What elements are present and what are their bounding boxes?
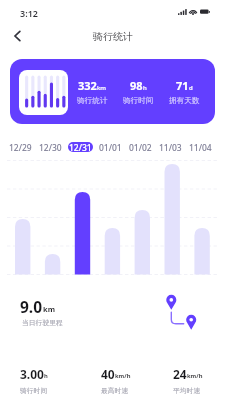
staticText: 40 — [101, 366, 115, 382]
staticText: 骑行统计 — [93, 30, 133, 43]
staticText: 01/02 — [129, 142, 152, 152]
staticText: 24 — [173, 366, 187, 382]
staticText: 骑行时间 — [20, 386, 48, 395]
staticText: 71 — [176, 78, 189, 93]
staticText: h — [44, 372, 48, 380]
button[interactable]: 01/02 — [128, 142, 153, 152]
staticText: 3.00 — [20, 366, 44, 382]
staticText: 12/31 — [69, 142, 92, 152]
staticText: km — [43, 304, 55, 314]
staticText: 01/01 — [99, 142, 122, 152]
staticText: 拥有天数 — [169, 96, 200, 106]
staticText: 最高时速 — [101, 386, 129, 395]
staticText: 9.0 — [20, 296, 43, 317]
staticText: 3:12 — [20, 7, 38, 19]
staticText: 11/03 — [159, 142, 182, 152]
button[interactable]: 40 — [101, 366, 131, 395]
staticText: 当日行驶里程 — [22, 318, 63, 327]
staticText: 98 — [130, 78, 143, 93]
button[interactable]: 332 — [10, 59, 215, 124]
staticText: 11/04 — [189, 142, 212, 152]
button[interactable]: 11/03 — [158, 142, 183, 152]
staticText: 平均时速 — [173, 386, 201, 395]
button[interactable]: 12/29 — [8, 142, 33, 152]
staticText: 12/30 — [39, 142, 62, 152]
button[interactable]: 12/31 — [68, 142, 93, 152]
other: Route — [164, 292, 202, 332]
staticText: 骑行统计 — [77, 96, 108, 106]
staticText: 骑行时间 — [123, 96, 154, 106]
staticText: d — [189, 84, 193, 92]
button[interactable]: 01/01 — [98, 142, 123, 152]
button[interactable]: 3.00 — [20, 366, 48, 395]
staticText: km/h — [115, 372, 131, 380]
button[interactable]: 11/04 — [188, 142, 213, 152]
button[interactable]: 12/30 — [38, 142, 63, 152]
staticText: km/h — [187, 372, 203, 380]
staticText: km — [97, 84, 107, 92]
staticText: h — [143, 84, 147, 92]
button[interactable]: 24 — [173, 366, 203, 395]
button[interactable]: Back — [8, 27, 26, 45]
staticText: 12/29 — [9, 142, 32, 152]
staticText: 332 — [78, 78, 97, 93]
